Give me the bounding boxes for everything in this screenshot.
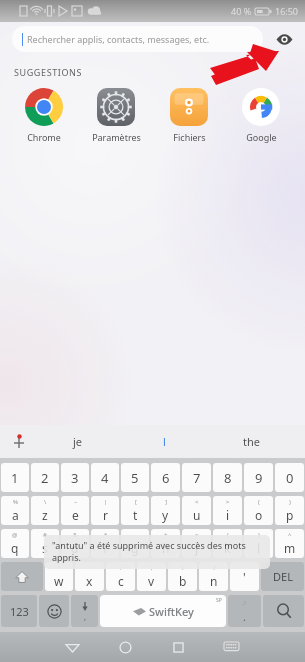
button[interactable]: the bbox=[208, 425, 295, 458]
staticText: p bbox=[286, 507, 294, 523]
button[interactable]: ; bbox=[137, 562, 166, 591]
button[interactable]: Ajouter au dictionnaire bbox=[8, 431, 30, 453]
button[interactable]: ] bbox=[151, 496, 180, 525]
staticText: Fichiers bbox=[173, 131, 206, 143]
button[interactable]: 8 bbox=[213, 463, 242, 492]
button[interactable]: Point bbox=[228, 595, 261, 627]
staticText: j bbox=[195, 540, 199, 556]
button[interactable]: ' bbox=[75, 562, 104, 591]
button[interactable]: Applications récentes bbox=[152, 632, 205, 662]
button[interactable]: < bbox=[182, 496, 211, 525]
staticText: ; bbox=[151, 564, 153, 572]
button[interactable]: * bbox=[91, 529, 119, 558]
button[interactable]: Emoji bbox=[39, 595, 69, 627]
staticText: - bbox=[134, 531, 136, 539]
button[interactable]: ( bbox=[213, 529, 242, 558]
button[interactable]: Rechercher applis, contacts, messages, e… bbox=[12, 26, 263, 52]
staticText: 123 bbox=[10, 604, 29, 619]
button[interactable]: " bbox=[45, 562, 73, 591]
button[interactable]: Google bbox=[227, 86, 295, 145]
button[interactable]: @ bbox=[1, 529, 29, 558]
button[interactable]: Majuscule bbox=[1, 562, 43, 591]
staticText: 1 bbox=[11, 469, 19, 487]
button[interactable]: - bbox=[121, 529, 149, 558]
staticText: < bbox=[195, 498, 199, 506]
button[interactable]: 7 bbox=[182, 463, 211, 492]
staticText: , bbox=[84, 611, 87, 622]
button[interactable]: Supprimer bbox=[261, 562, 304, 591]
button[interactable]: je bbox=[34, 425, 121, 458]
button[interactable]: 2 bbox=[31, 463, 59, 492]
staticText: t bbox=[133, 507, 138, 523]
button[interactable]: 1 bbox=[1, 463, 29, 492]
staticText: m bbox=[284, 540, 296, 556]
button[interactable]: ^ bbox=[275, 529, 304, 558]
button[interactable]: Accueil bbox=[99, 632, 152, 662]
button[interactable]: \ bbox=[31, 496, 59, 525]
button[interactable]: ~ bbox=[61, 496, 89, 525]
staticText: w bbox=[54, 573, 64, 589]
button[interactable]: ) bbox=[244, 529, 273, 558]
staticText: # bbox=[43, 531, 47, 539]
staticText: 0 bbox=[286, 469, 294, 487]
button[interactable]: | bbox=[91, 496, 119, 525]
button[interactable]: Retour bbox=[46, 632, 99, 662]
button[interactable]: 6 bbox=[151, 463, 180, 492]
button[interactable]: % bbox=[1, 496, 29, 525]
button[interactable]: 123 bbox=[1, 595, 37, 627]
button[interactable]: Paramètres bbox=[82, 86, 150, 145]
staticText: 6 bbox=[162, 469, 170, 487]
button[interactable]: ' bbox=[230, 562, 259, 591]
button[interactable]: : bbox=[106, 562, 135, 591]
staticText: | bbox=[104, 498, 108, 506]
button[interactable]: ! bbox=[168, 562, 197, 591]
staticText: 7 bbox=[193, 469, 201, 487]
staticText: " bbox=[58, 564, 61, 572]
button[interactable]: 3 bbox=[61, 463, 89, 492]
button[interactable]: ( bbox=[244, 496, 273, 525]
button[interactable]: Rechercher bbox=[263, 595, 304, 627]
button[interactable]: [ bbox=[121, 496, 149, 525]
staticText: 5 bbox=[131, 469, 139, 487]
button[interactable]: 0 bbox=[275, 463, 304, 492]
staticText: > bbox=[226, 498, 230, 506]
button[interactable]: Masquer le clavier bbox=[205, 632, 258, 662]
button[interactable]: ) bbox=[275, 496, 304, 525]
staticText: % bbox=[13, 498, 18, 506]
staticText: o bbox=[255, 507, 263, 523]
button[interactable]: l bbox=[121, 425, 208, 458]
staticText: 16:50 bbox=[275, 5, 299, 17]
staticText: * bbox=[104, 531, 108, 539]
button[interactable]: = bbox=[182, 529, 211, 558]
button[interactable]: Espace bbox=[100, 595, 226, 627]
button[interactable]: 5 bbox=[121, 463, 149, 492]
button[interactable]: + bbox=[151, 529, 180, 558]
staticText: d bbox=[71, 540, 79, 556]
staticText: Chrome bbox=[27, 131, 61, 143]
staticText: x bbox=[86, 573, 93, 589]
button[interactable]: Afficher les applications masquées bbox=[271, 26, 297, 52]
staticText: s bbox=[42, 540, 48, 556]
staticText: l bbox=[163, 434, 166, 449]
staticText: y bbox=[162, 507, 169, 523]
staticText: SP bbox=[216, 597, 222, 604]
button[interactable]: 9 bbox=[244, 463, 273, 492]
staticText: ( bbox=[227, 531, 229, 539]
staticText: f bbox=[103, 540, 108, 556]
button[interactable]: > bbox=[213, 496, 242, 525]
button[interactable]: Virgule bbox=[71, 595, 98, 627]
staticText: ) bbox=[258, 531, 260, 539]
button[interactable]: # bbox=[31, 529, 59, 558]
staticText: 40 % bbox=[231, 5, 252, 17]
button[interactable]: Fichiers bbox=[155, 86, 223, 145]
staticText: b bbox=[179, 573, 187, 589]
button[interactable]: 4 bbox=[91, 463, 119, 492]
staticText: ! bbox=[182, 564, 184, 572]
button[interactable]: ? bbox=[199, 562, 228, 591]
button[interactable]: Chrome bbox=[10, 86, 78, 145]
staticText: \ bbox=[44, 498, 47, 506]
button[interactable]: & bbox=[61, 529, 89, 558]
staticText: 3 bbox=[71, 469, 79, 487]
staticText: v bbox=[148, 573, 155, 589]
staticText: Google bbox=[246, 131, 277, 143]
